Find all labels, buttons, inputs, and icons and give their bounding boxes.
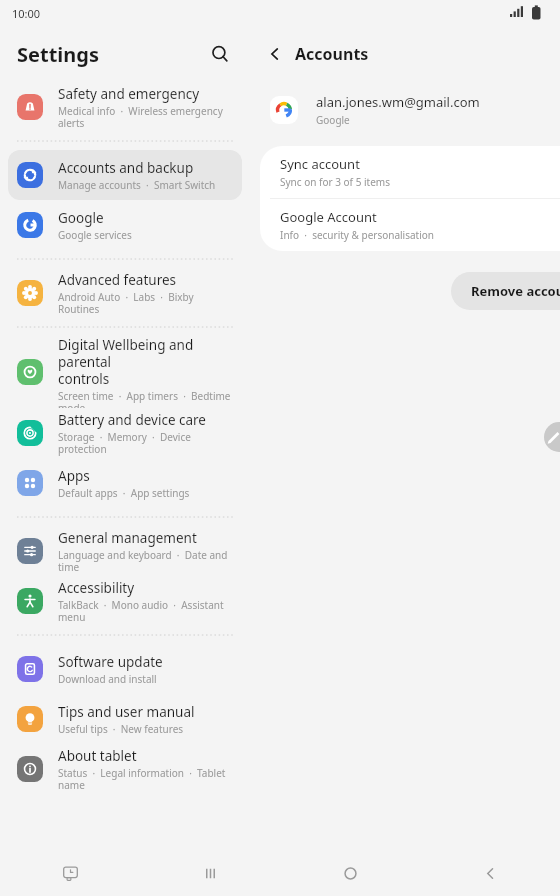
staticText: About tablet [58, 747, 137, 765]
staticText: Settings [17, 41, 99, 68]
staticText: Tips and user manual [58, 703, 195, 721]
button[interactable]: General management [8, 526, 242, 576]
button[interactable]: About tablet [8, 744, 242, 794]
button[interactable]: Safety and emergency [8, 82, 242, 132]
button[interactable]: Advanced features [8, 268, 242, 318]
button[interactable]: Apps [8, 458, 242, 508]
staticText: Accounts and backup [58, 159, 194, 177]
button[interactable]: Google [8, 200, 242, 250]
button[interactable]: Back [420, 850, 560, 896]
button[interactable]: Remove account [451, 272, 560, 310]
staticText: Sync account [280, 155, 360, 173]
staticText: Google [58, 209, 104, 227]
button[interactable]: Back [260, 39, 375, 69]
staticText: Status · Legal information · Tablet name [58, 766, 236, 792]
staticText: General management [58, 529, 197, 547]
button[interactable]: Battery and device care [8, 408, 242, 458]
staticText: 10:00 [12, 6, 41, 21]
staticText: Apps [58, 467, 90, 485]
staticText: Battery and device care [58, 411, 206, 429]
staticText: Useful tips · New features [58, 722, 184, 736]
staticText: Sync on for 3 of 5 items [280, 175, 390, 189]
button[interactable]: Software update [8, 644, 242, 694]
staticText: Advanced features [58, 271, 177, 289]
staticText: Storage · Memory · Device protection [58, 430, 236, 456]
button[interactable]: Recent apps [140, 850, 280, 896]
other: Back [266, 45, 284, 63]
staticText: Info · security & personalisation [280, 228, 435, 242]
staticText: Android Auto · Labs · Bixby Routines [58, 290, 236, 316]
staticText: Digital Wellbeing and parental controls [58, 336, 236, 388]
staticText: Default apps · App settings [58, 486, 190, 500]
staticText: alan.jones.wm@gmail.com [316, 93, 480, 111]
staticText: Language and keyboard · Date and time [58, 548, 236, 574]
button[interactable]: Search [202, 36, 238, 72]
staticText: Screen time · App timers · Bedtime mode [58, 389, 231, 408]
button[interactable]: Google Account [260, 199, 560, 251]
button[interactable]: Digital Wellbeing and parental controls [8, 336, 242, 408]
staticText: Manage accounts · Smart Switch [58, 178, 216, 192]
staticText: Accounts [295, 43, 369, 65]
button[interactable]: Edge panel [544, 422, 560, 452]
staticText: Google services [58, 228, 132, 242]
button[interactable]: Tips and user manual [8, 694, 242, 744]
button[interactable]: Accounts and backup [8, 150, 242, 200]
button[interactable]: Sync account [260, 146, 560, 198]
button[interactable]: Accessibility [8, 576, 242, 626]
staticText: Accessibility [58, 579, 135, 597]
staticText: Safety and emergency [58, 85, 200, 103]
staticText: Software update [58, 653, 163, 671]
button[interactable]: Home [280, 850, 420, 896]
staticText: Google Account [280, 208, 377, 226]
staticText: Medical info · Wireless emergency alerts [58, 104, 236, 130]
button[interactable]: Screenshot [0, 850, 140, 896]
button[interactable]: alan.jones.wm@gmail.com [250, 82, 560, 138]
staticText: TalkBack · Mono audio · Assistant menu [58, 598, 236, 624]
staticText: Download and install [58, 672, 157, 686]
staticText: Remove account [471, 282, 560, 300]
staticText: Google [316, 113, 350, 127]
